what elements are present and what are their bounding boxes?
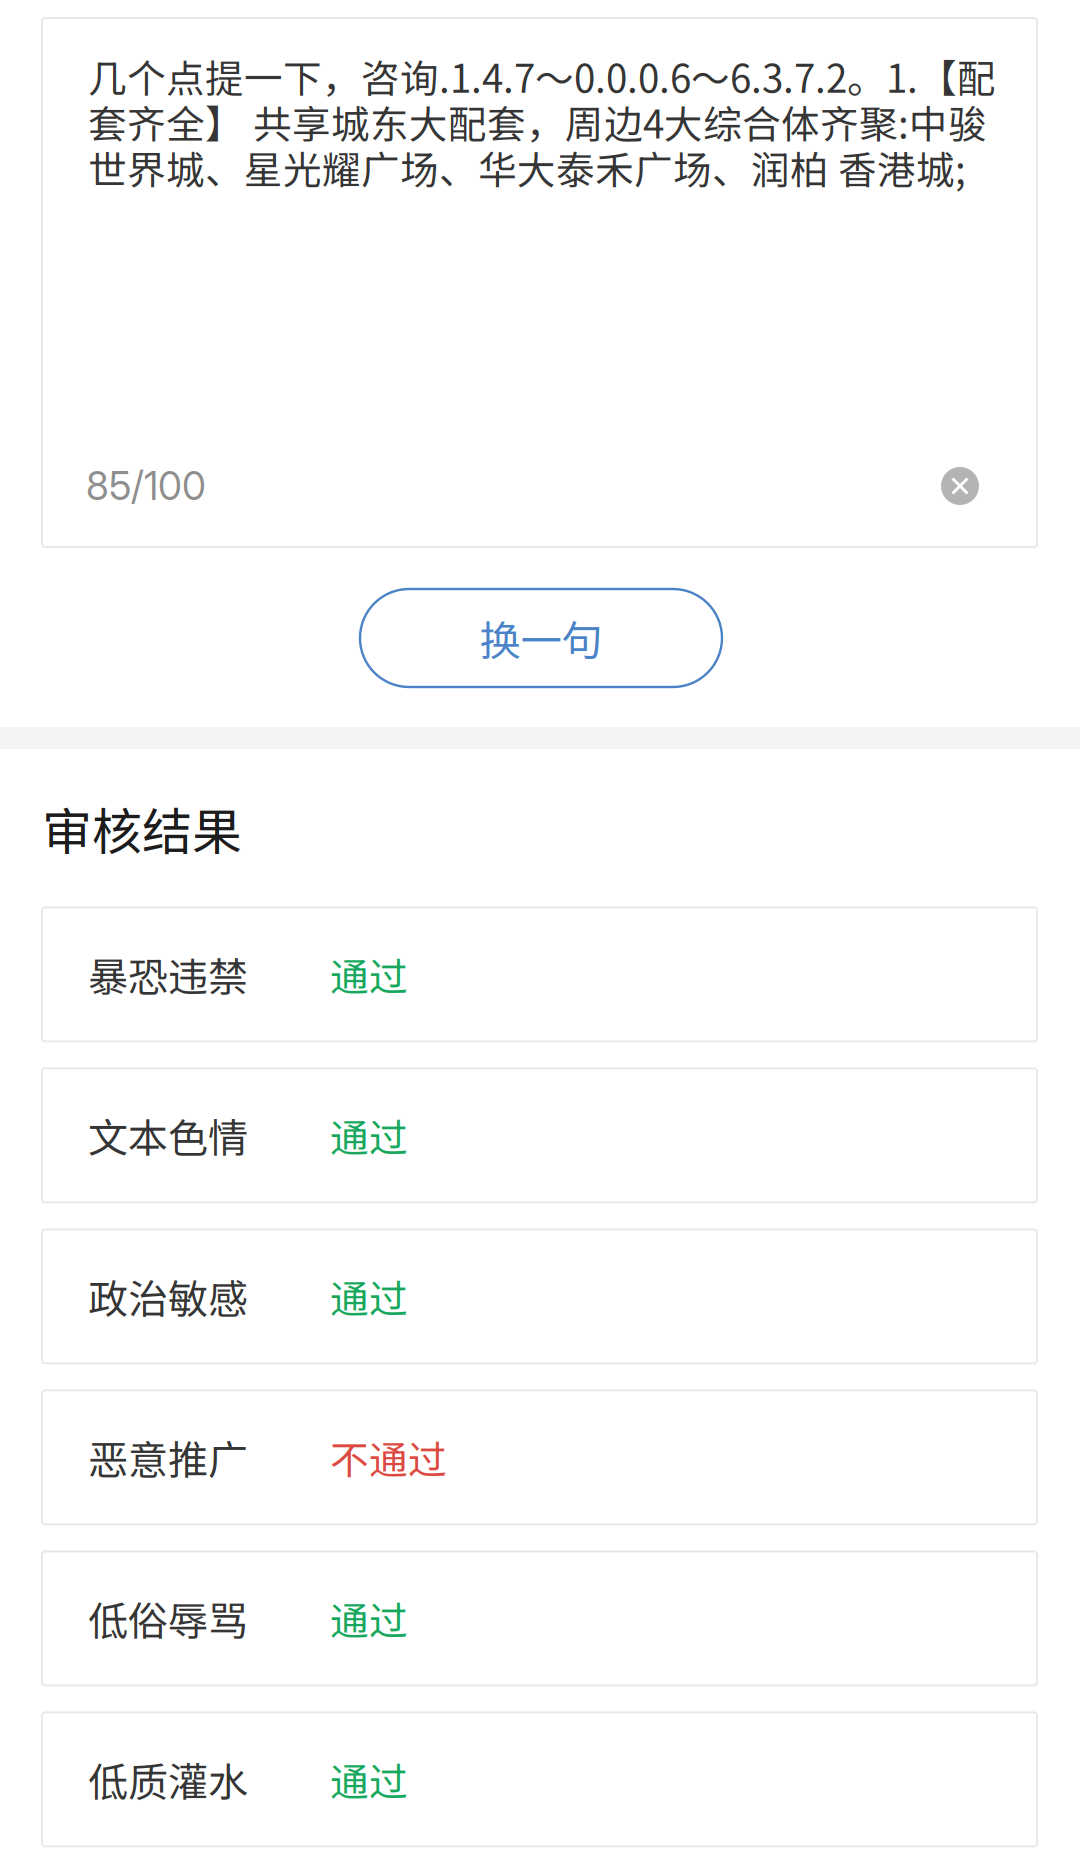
staticText: 几个点提一下，咨询.1.4.7～0.0.0.6～6.3.7.2。1.【配套齐全】… [88,53,996,190]
button[interactable]: 低质灌水 [42,1712,1037,1846]
button[interactable]: 暴恐违禁 [42,907,1037,1041]
staticText: 审核结果 [42,792,242,864]
staticText: 通过 [330,1751,408,1807]
button[interactable]: 换一句 [360,589,722,687]
staticText: 通过 [330,946,408,1002]
staticText: 通过 [330,1268,408,1324]
staticText: 通过 [330,1107,408,1163]
button[interactable]: 政治敏感 [42,1229,1037,1363]
staticText: 暴恐违禁 [88,945,248,1003]
staticText: 85/100 [86,463,206,509]
staticText: 政治敏感 [88,1267,248,1325]
button[interactable]: 文本色情 [42,1068,1037,1202]
staticText: 文本色情 [88,1106,248,1164]
button[interactable]: 低俗辱骂 [42,1551,1037,1685]
button[interactable]: Clear text [928,454,992,518]
staticText: 低俗辱骂 [88,1589,248,1647]
staticText: 不通过 [330,1429,447,1485]
staticText: 恶意推广 [88,1428,248,1486]
button[interactable]: 恶意推广 [42,1390,1037,1524]
staticText: 换一句 [479,608,602,668]
staticText: 低质灌水 [88,1750,248,1808]
staticText: 通过 [330,1590,408,1646]
